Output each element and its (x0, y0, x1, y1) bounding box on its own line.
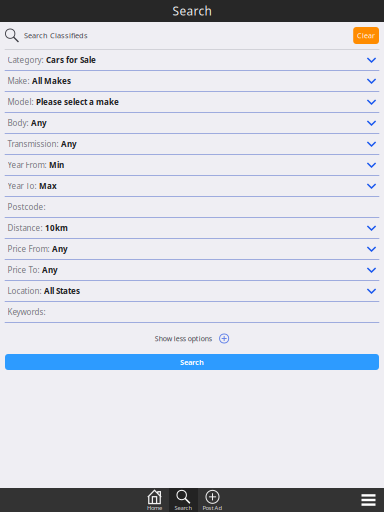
button[interactable]: Price To: (0, 260, 384, 281)
staticText: Any (31, 118, 47, 128)
staticText: Distance: (7, 223, 42, 233)
button[interactable]: Transmission: (0, 134, 384, 155)
staticText: Search (174, 504, 192, 512)
staticText: Search (172, 3, 211, 19)
button[interactable]: Location: (0, 281, 384, 302)
staticText: 10km (45, 223, 68, 233)
staticText: Search (180, 357, 204, 367)
staticText: Search Classifieds (24, 30, 88, 40)
staticText: Postcode: (7, 202, 45, 212)
button[interactable]: Year From: (0, 155, 384, 176)
staticText: All States (44, 286, 80, 296)
staticText: Any (52, 244, 68, 254)
staticText: Any (61, 139, 77, 149)
staticText: Min (49, 160, 64, 170)
button[interactable]: Make: (0, 71, 384, 92)
staticText: Post Ad (202, 504, 222, 512)
button[interactable]: Year To: (0, 176, 384, 197)
button[interactable]: Show less options (155, 323, 229, 354)
staticText: Cars for Sale (46, 55, 96, 65)
button[interactable]: Menu (353, 488, 384, 512)
button[interactable]: Clear (353, 27, 379, 44)
staticText: All Makes (32, 76, 71, 86)
button[interactable]: Distance: (0, 218, 384, 239)
staticText: Price To: (7, 265, 39, 275)
staticText: Any (42, 265, 58, 275)
button[interactable]: Keywords: (0, 302, 384, 323)
staticText: Body: (7, 118, 28, 128)
staticText: Transmission: (7, 139, 58, 149)
staticText: Year To: (7, 181, 36, 191)
staticText: Home (147, 504, 162, 512)
staticText: Keywords: (7, 307, 45, 317)
staticText: Please select a make (36, 97, 119, 107)
staticText: Year From: (7, 160, 46, 170)
staticText: Model: (7, 97, 33, 107)
button[interactable]: Category: (0, 50, 384, 71)
staticText: Make: (7, 76, 29, 86)
staticText: Price From: (7, 244, 49, 254)
button[interactable]: Post Ad (198, 488, 227, 512)
button[interactable]: Postcode: (0, 197, 384, 218)
staticText: Show less options (155, 334, 212, 343)
button[interactable]: Search (5, 354, 379, 370)
staticText: Clear (357, 31, 375, 40)
button[interactable]: Body: (0, 113, 384, 134)
staticText: Category: (7, 55, 43, 65)
staticText: Max (39, 181, 57, 191)
button[interactable]: Price From: (0, 239, 384, 260)
staticText: Location: (7, 286, 41, 296)
button[interactable]: Search (169, 488, 198, 512)
button[interactable]: Home (140, 488, 169, 512)
button[interactable]: Model: (0, 92, 384, 113)
